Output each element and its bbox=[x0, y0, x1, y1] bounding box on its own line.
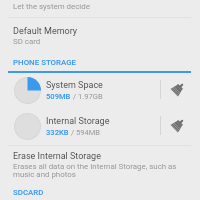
button[interactable]: Internal Storage bbox=[0, 109, 160, 143]
staticText: Let the system decide bbox=[13, 2, 90, 11]
button[interactable]: Let the system decide bbox=[0, 0, 200, 17]
button[interactable]: Clean Internal Storage bbox=[161, 109, 200, 143]
staticText: Erases all data on the Internal Storage,… bbox=[13, 162, 177, 171]
staticText: SDCARD bbox=[13, 188, 44, 197]
button[interactable]: Clean System Space bbox=[161, 73, 200, 107]
button[interactable]: System Space bbox=[0, 73, 160, 107]
staticText: 332KB bbox=[46, 128, 69, 137]
staticText: 509MB bbox=[46, 92, 71, 101]
button[interactable]: Erase Internal Storage bbox=[0, 146, 200, 183]
staticText: / 594MB bbox=[69, 128, 101, 137]
staticText: Internal Storage bbox=[46, 116, 110, 127]
staticText: Default Memory bbox=[13, 26, 78, 37]
staticText: / 1.97GB bbox=[71, 92, 103, 101]
button[interactable]: Default Memory bbox=[0, 18, 200, 48]
staticText: System Space bbox=[46, 80, 103, 91]
staticText: Erase Internal Storage bbox=[13, 151, 101, 162]
staticText: SD card bbox=[13, 37, 41, 46]
staticText: PHONE STORAGE bbox=[13, 58, 76, 67]
staticText: music and photos bbox=[13, 170, 76, 179]
